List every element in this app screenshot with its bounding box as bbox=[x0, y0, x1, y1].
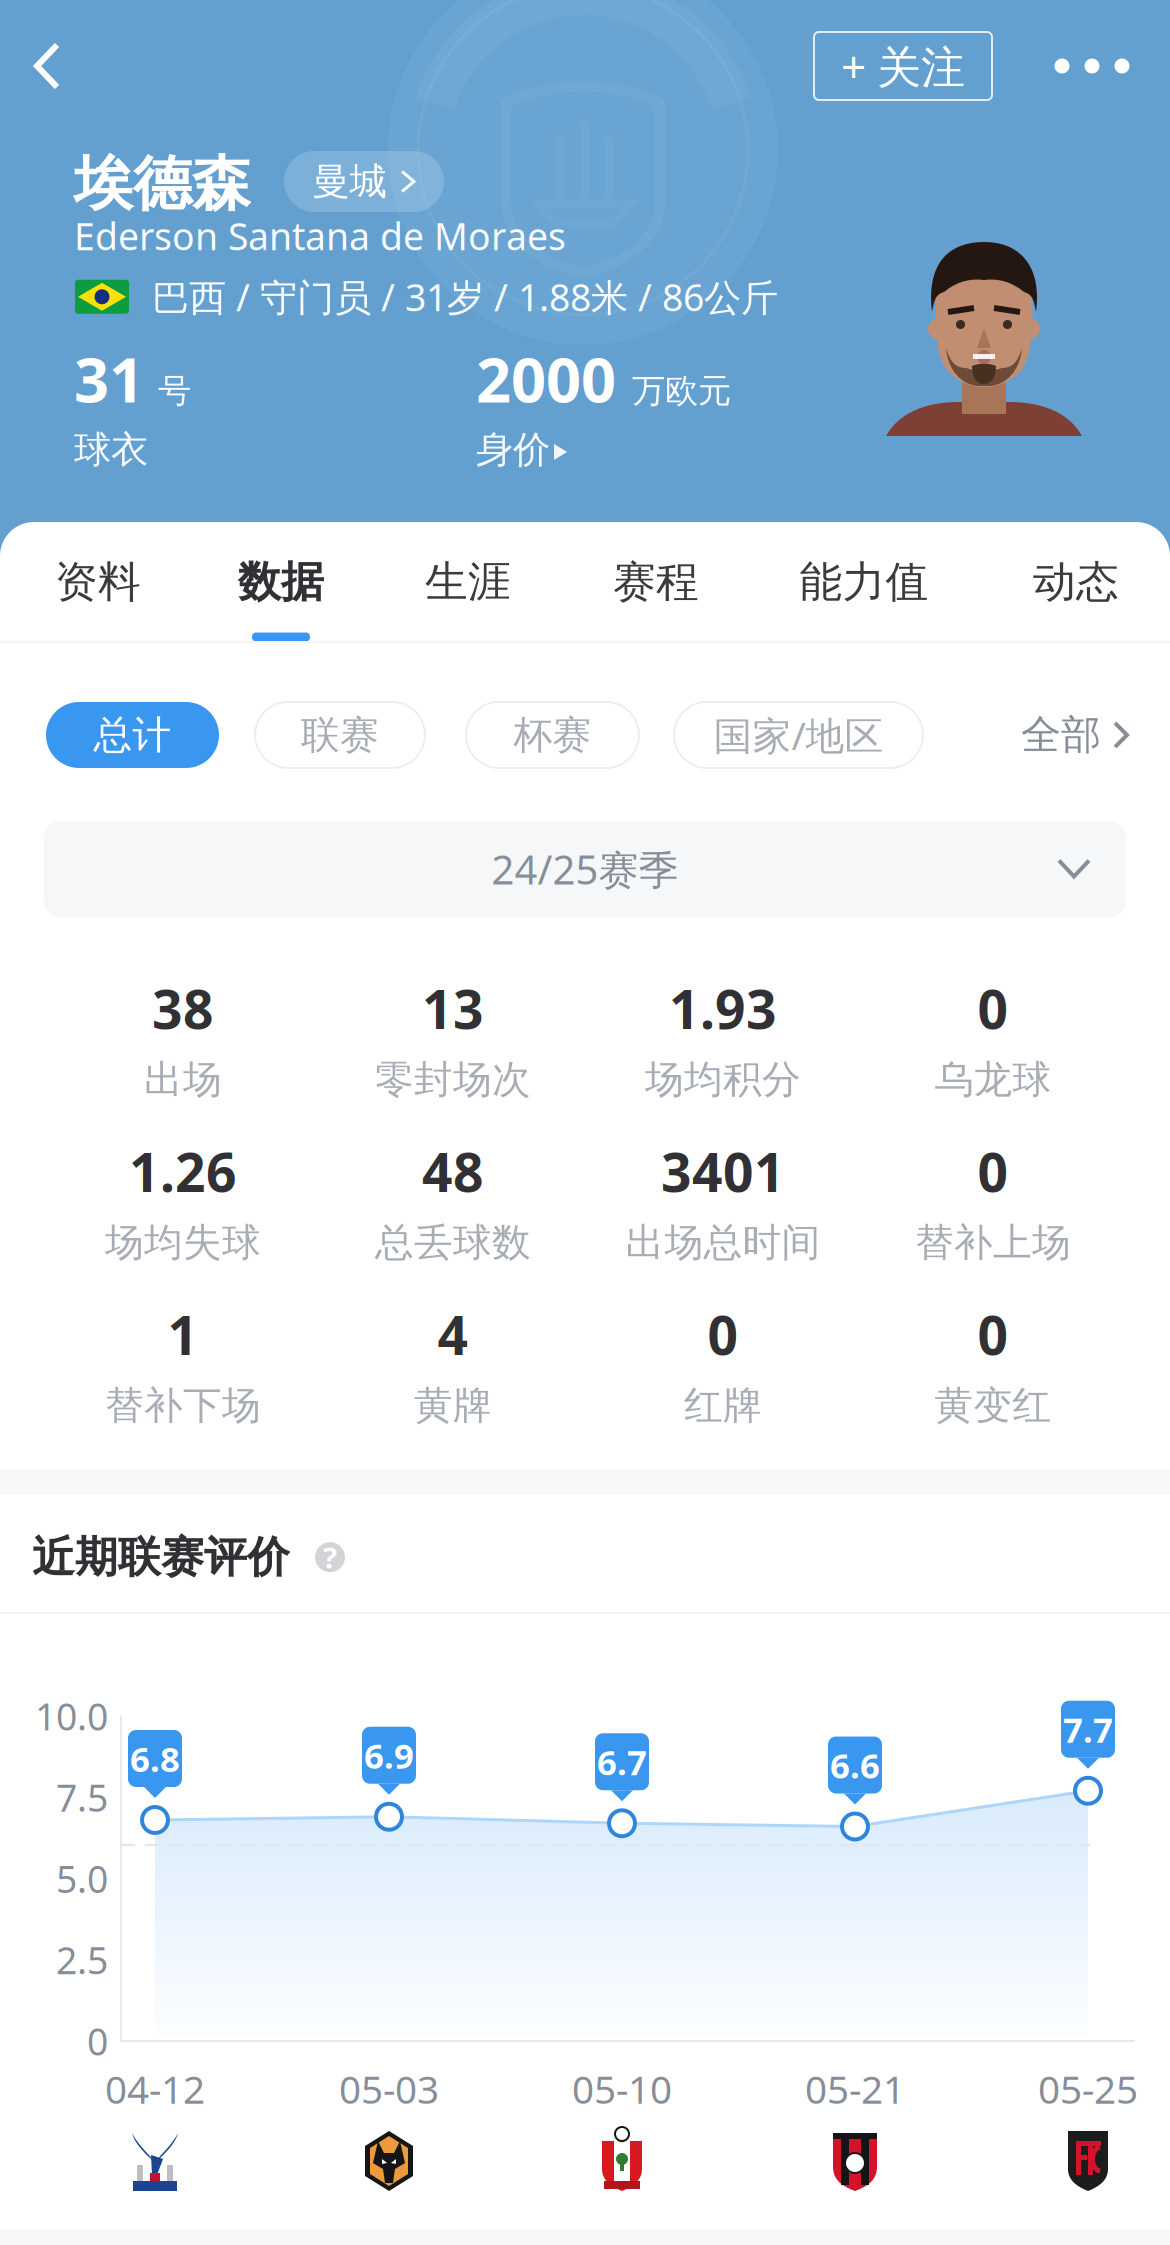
staticText: 4 bbox=[437, 1299, 468, 1370]
staticText: 1.26 bbox=[129, 1136, 237, 1207]
button[interactable]: 全部 bbox=[1021, 702, 1129, 768]
staticText: 赛程 bbox=[613, 556, 699, 608]
staticText: 巴西 / 守门员 / 31岁 / 1.88米 / 86公斤 bbox=[152, 272, 778, 322]
staticText: 6.7 bbox=[597, 1739, 647, 1785]
staticText: 0 bbox=[977, 1136, 1008, 1207]
staticText: 总计 bbox=[93, 711, 171, 759]
button[interactable]: 总计 bbox=[46, 702, 219, 768]
button[interactable]: + 关注 bbox=[814, 32, 992, 100]
staticText: 6.6 bbox=[830, 1742, 880, 1788]
staticText: 0 bbox=[977, 973, 1008, 1044]
staticText: 黄变红 bbox=[934, 1382, 1051, 1429]
staticText: 场均积分 bbox=[645, 1056, 801, 1103]
button[interactable]: 说明 bbox=[308, 1535, 352, 1579]
staticText: 出场总时间 bbox=[625, 1219, 820, 1266]
staticText: 38 bbox=[152, 973, 214, 1044]
staticText: 红牌 bbox=[684, 1382, 762, 1429]
button[interactable]: 生涯 bbox=[378, 522, 558, 648]
staticText: 全部 bbox=[1021, 710, 1101, 759]
staticText: 出场 bbox=[144, 1056, 222, 1103]
button[interactable]: 资料 bbox=[8, 522, 188, 648]
staticText: 球衣 bbox=[74, 427, 148, 473]
staticText: 数据 bbox=[238, 556, 324, 608]
staticText: 乌龙球 bbox=[934, 1056, 1051, 1103]
staticText: ? bbox=[323, 1538, 337, 1577]
staticText: 替补上场 bbox=[915, 1219, 1071, 1266]
staticText: 能力值 bbox=[799, 556, 928, 608]
staticText: 6.8 bbox=[130, 1735, 180, 1781]
button[interactable]: 国家/地区 bbox=[674, 702, 923, 768]
staticText: 1.93 bbox=[669, 973, 777, 1044]
staticText: 1 bbox=[167, 1299, 198, 1370]
staticText: 埃德森 bbox=[74, 148, 251, 220]
staticText: Ederson Santana de Moraes bbox=[74, 211, 566, 261]
button[interactable]: 更多 bbox=[1032, 32, 1152, 100]
staticText: 05-03 bbox=[339, 2063, 439, 2114]
staticText: 替补下场 bbox=[105, 1382, 261, 1429]
staticText: 资料 bbox=[55, 556, 141, 608]
staticText: 48 bbox=[422, 1136, 484, 1207]
staticText: 05-25 bbox=[1038, 2063, 1138, 2114]
button[interactable]: 杯赛 bbox=[466, 702, 639, 768]
button[interactable]: 能力值 bbox=[774, 522, 954, 648]
staticText: 身价 bbox=[476, 427, 550, 473]
staticText: 0 bbox=[707, 1299, 738, 1370]
staticText: 7.7 bbox=[1063, 1706, 1113, 1752]
staticText: 近期联赛评价 bbox=[32, 1531, 290, 1583]
staticText: 7.5 bbox=[56, 1772, 108, 1822]
staticText: 2.5 bbox=[56, 1935, 108, 1985]
staticText: 0 bbox=[977, 1299, 1008, 1370]
staticText: 生涯 bbox=[425, 556, 511, 608]
staticText: 动态 bbox=[1033, 556, 1119, 608]
button[interactable]: 联赛 bbox=[255, 702, 425, 768]
button[interactable]: 动态 bbox=[986, 522, 1166, 648]
staticText: 黄牌 bbox=[414, 1382, 492, 1429]
staticText: 曼城 bbox=[312, 159, 386, 204]
button[interactable]: 24/25赛季 bbox=[44, 821, 1126, 917]
staticText: 3401 bbox=[661, 1136, 785, 1207]
staticText: 05-10 bbox=[572, 2063, 672, 2114]
staticText: 万欧元 bbox=[632, 370, 731, 411]
button[interactable]: 返回 bbox=[0, 18, 102, 114]
staticText: 5.0 bbox=[56, 1854, 108, 1903]
staticText: 0 bbox=[87, 2016, 108, 2066]
button[interactable]: 曼城 bbox=[284, 151, 444, 212]
button[interactable]: 赛程 bbox=[566, 522, 746, 648]
staticText: 10.0 bbox=[35, 1691, 108, 1741]
staticText: 31 bbox=[74, 338, 144, 419]
staticText: 04-12 bbox=[105, 2063, 205, 2114]
staticText: 24/25赛季 bbox=[491, 842, 678, 895]
staticText: 总丢球数 bbox=[375, 1219, 531, 1266]
staticText: 2000 bbox=[476, 338, 616, 419]
staticText: 零封场次 bbox=[375, 1056, 531, 1103]
staticText: 13 bbox=[422, 973, 484, 1044]
staticText: 6.9 bbox=[364, 1732, 414, 1778]
staticText: 国家/地区 bbox=[713, 709, 883, 761]
staticText: 05-21 bbox=[805, 2063, 905, 2114]
staticText: 联赛 bbox=[301, 711, 379, 759]
button[interactable]: 数据 bbox=[191, 522, 371, 648]
staticText: 号 bbox=[158, 370, 191, 411]
staticText: 场均失球 bbox=[105, 1219, 261, 1266]
staticText: 杯赛 bbox=[513, 711, 591, 759]
staticText: + 关注 bbox=[841, 37, 965, 95]
